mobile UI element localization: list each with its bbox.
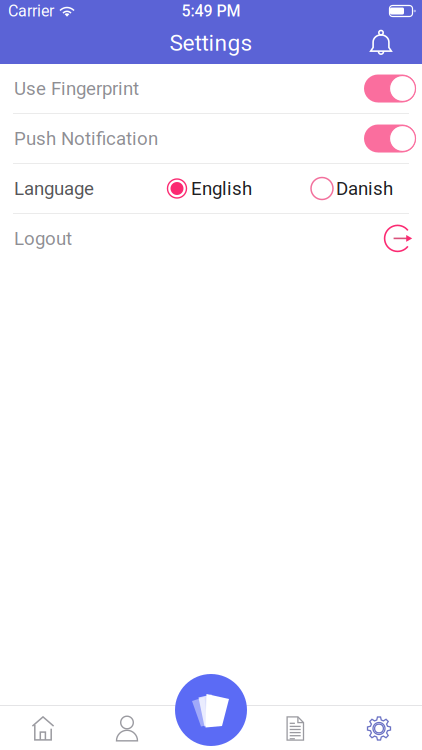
button[interactable]: Use Fingerprint [0,64,422,113]
button[interactable]: Profile [85,706,169,750]
button[interactable]: Documents [253,706,337,750]
staticText: Push Notification [14,128,158,149]
staticText: Danish [336,178,393,199]
staticText: Language [14,178,94,199]
button[interactable]: Home [1,706,85,750]
button[interactable]: Logout [0,214,422,263]
button[interactable]: New document [175,674,247,746]
button[interactable]: Danish [311,168,393,208]
button[interactable]: Settings [337,706,421,750]
button[interactable]: English [166,168,252,208]
staticText: Use Fingerprint [14,78,139,99]
staticText: 5:49 PM [181,2,240,20]
staticText: Carrier [8,2,54,20]
button[interactable]: Push Notification [0,114,422,163]
button[interactable]: Notifications [359,22,403,64]
staticText: Settings [169,30,252,56]
staticText: Logout [14,228,72,249]
staticText: English [191,178,252,199]
